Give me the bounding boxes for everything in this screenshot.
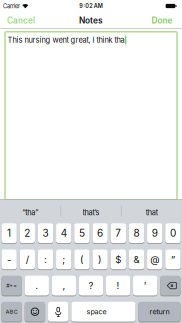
button[interactable]: “tha”	[1, 203, 59, 223]
staticText: 0	[170, 227, 176, 239]
button[interactable]: More symbols	[1, 275, 22, 296]
button[interactable]: Done	[148, 13, 176, 27]
button[interactable]: $	[111, 249, 126, 270]
staticText: 9	[152, 227, 158, 239]
staticText: ”	[171, 254, 175, 265]
staticText: Carrier	[3, 3, 20, 10]
button[interactable]: 1	[1, 223, 17, 244]
staticText: 4	[61, 227, 67, 239]
staticText: “tha”	[22, 208, 38, 217]
button[interactable]: @	[147, 249, 162, 270]
button[interactable]: return	[138, 301, 180, 322]
staticText: #+=	[6, 282, 17, 289]
button[interactable]: (	[74, 249, 90, 270]
button[interactable]: /	[20, 249, 35, 270]
button[interactable]: Delete	[160, 275, 181, 296]
button[interactable]: )	[92, 249, 108, 270]
staticText: &	[133, 254, 139, 265]
button[interactable]: 7	[111, 223, 126, 244]
staticText: @	[150, 254, 159, 265]
staticText: '	[144, 280, 147, 291]
staticText: 7	[115, 227, 121, 239]
staticText: 2	[24, 227, 30, 239]
staticText: Done	[151, 15, 172, 25]
button[interactable]: 3	[38, 223, 53, 244]
staticText: ?	[88, 280, 93, 291]
staticText: ,	[62, 280, 65, 291]
button[interactable]: ”	[165, 249, 181, 270]
staticText: 9:02	[79, 3, 92, 9]
staticText: Cancel	[7, 15, 35, 25]
staticText: !	[117, 280, 120, 291]
staticText: that’s	[82, 208, 99, 217]
button[interactable]: Dictate	[48, 301, 68, 322]
staticText: return	[149, 307, 169, 316]
button[interactable]: Cancel	[0, 13, 43, 27]
staticText: 8	[133, 227, 139, 239]
button[interactable]: 9	[147, 223, 162, 244]
staticText: space	[86, 307, 106, 316]
staticText: ABC	[6, 308, 18, 315]
staticText: .	[35, 280, 38, 291]
staticText: )	[98, 254, 102, 265]
staticText: Notes	[79, 15, 103, 25]
button[interactable]: that	[123, 203, 181, 223]
button[interactable]: 8	[129, 223, 144, 244]
button[interactable]: space	[71, 301, 135, 322]
staticText: 1	[7, 227, 11, 239]
staticText: $	[115, 254, 121, 265]
button[interactable]: that’s	[62, 203, 120, 223]
button[interactable]: 0	[165, 223, 181, 244]
staticText: This nursing went great, I think tha	[8, 35, 125, 45]
staticText: AM	[94, 3, 103, 9]
staticText: 5	[79, 227, 85, 239]
button[interactable]: -	[1, 249, 17, 270]
staticText: -	[7, 254, 11, 265]
button[interactable]: !	[106, 275, 130, 296]
button[interactable]: Letters	[1, 301, 22, 322]
button[interactable]: 2	[20, 223, 35, 244]
button[interactable]: ;	[56, 249, 71, 270]
staticText: :	[44, 254, 47, 265]
staticText: (	[80, 254, 84, 265]
staticText: ;	[62, 254, 65, 265]
staticText: that	[146, 208, 158, 217]
staticText: 3	[42, 227, 48, 239]
staticText: /	[26, 254, 29, 265]
button[interactable]: 4	[56, 223, 71, 244]
button[interactable]: Emoji	[25, 301, 45, 322]
button[interactable]: :	[38, 249, 53, 270]
staticText: 6	[97, 227, 103, 239]
button[interactable]: &	[129, 249, 144, 270]
button[interactable]: ,	[52, 275, 76, 296]
button[interactable]: 6	[92, 223, 108, 244]
button[interactable]: '	[133, 275, 157, 296]
button[interactable]: 5	[74, 223, 90, 244]
button[interactable]: .	[25, 275, 49, 296]
button[interactable]: ?	[79, 275, 103, 296]
